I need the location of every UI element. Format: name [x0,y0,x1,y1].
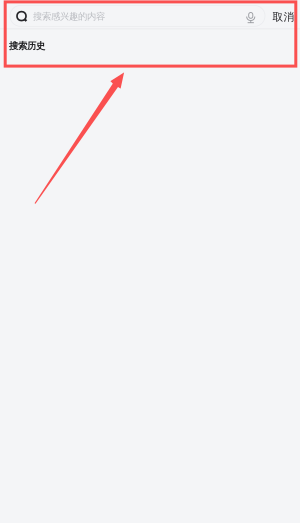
button[interactable]: 搜索历史 [9,40,49,52]
button[interactable]: 取消 [272,7,294,27]
staticText: 搜索感兴趣的内容 [33,11,105,22]
staticText: 搜索历史 [9,40,45,52]
button[interactable]: 搜索感兴趣的内容 [10,5,265,26]
staticText: 取消 [272,10,294,23]
